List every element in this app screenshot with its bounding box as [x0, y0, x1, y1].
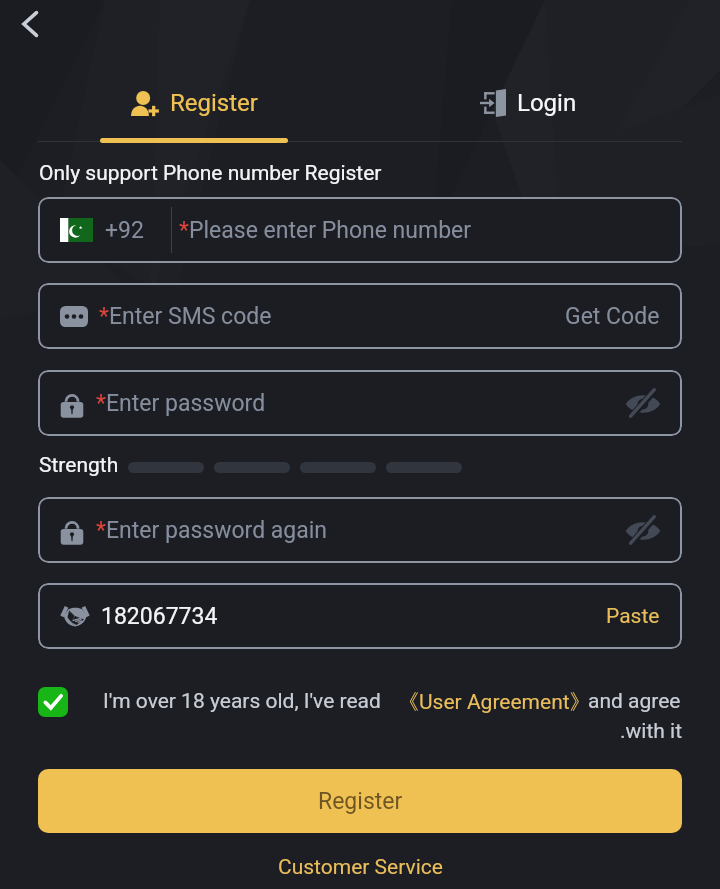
staticText: Enter password [106, 390, 266, 417]
button[interactable]: Register [131, 72, 258, 134]
button[interactable]: Login [480, 72, 577, 134]
staticText: 《User Agreement》 [398, 689, 591, 715]
button[interactable]: Show password [624, 384, 662, 422]
button[interactable]: * [38, 370, 682, 436]
button[interactable]: * [38, 497, 682, 563]
button[interactable]: +92 [38, 197, 682, 263]
button[interactable]: Show password again [624, 511, 662, 549]
button[interactable]: I agree checkbox [38, 687, 68, 717]
staticText: Paste [606, 604, 660, 629]
button[interactable]: Get Code [565, 283, 660, 349]
staticText: I'm over 18 years old, I've read [103, 689, 381, 714]
staticText: and agree [588, 689, 681, 714]
staticText: Register [170, 89, 258, 117]
button[interactable]: 《User Agreement》 [398, 689, 591, 715]
button[interactable]: * [38, 283, 682, 349]
staticText: Register [318, 788, 403, 815]
staticText: * [96, 390, 106, 417]
button[interactable]: Back [6, 0, 54, 48]
staticText: +92 [105, 217, 144, 244]
staticText: Please enter Phone number [189, 217, 472, 244]
staticText: * [179, 217, 189, 244]
staticText: Strength [39, 453, 119, 478]
staticText: Enter password again [106, 517, 328, 544]
staticText: 182067734 [101, 603, 218, 630]
staticText: Login [517, 89, 577, 117]
staticText: .with it [400, 719, 682, 744]
staticText: * [99, 303, 109, 330]
staticText: Get Code [565, 303, 660, 330]
staticText: * [96, 517, 106, 544]
button[interactable]: Customer Service [278, 855, 443, 880]
staticText: Only support Phone number Register [39, 161, 382, 186]
staticText: Enter SMS code [109, 303, 272, 330]
button[interactable]: Register [38, 769, 682, 833]
button[interactable]: 182067734 [38, 583, 682, 649]
button[interactable]: Paste [606, 583, 660, 649]
staticText: Customer Service [278, 855, 443, 880]
